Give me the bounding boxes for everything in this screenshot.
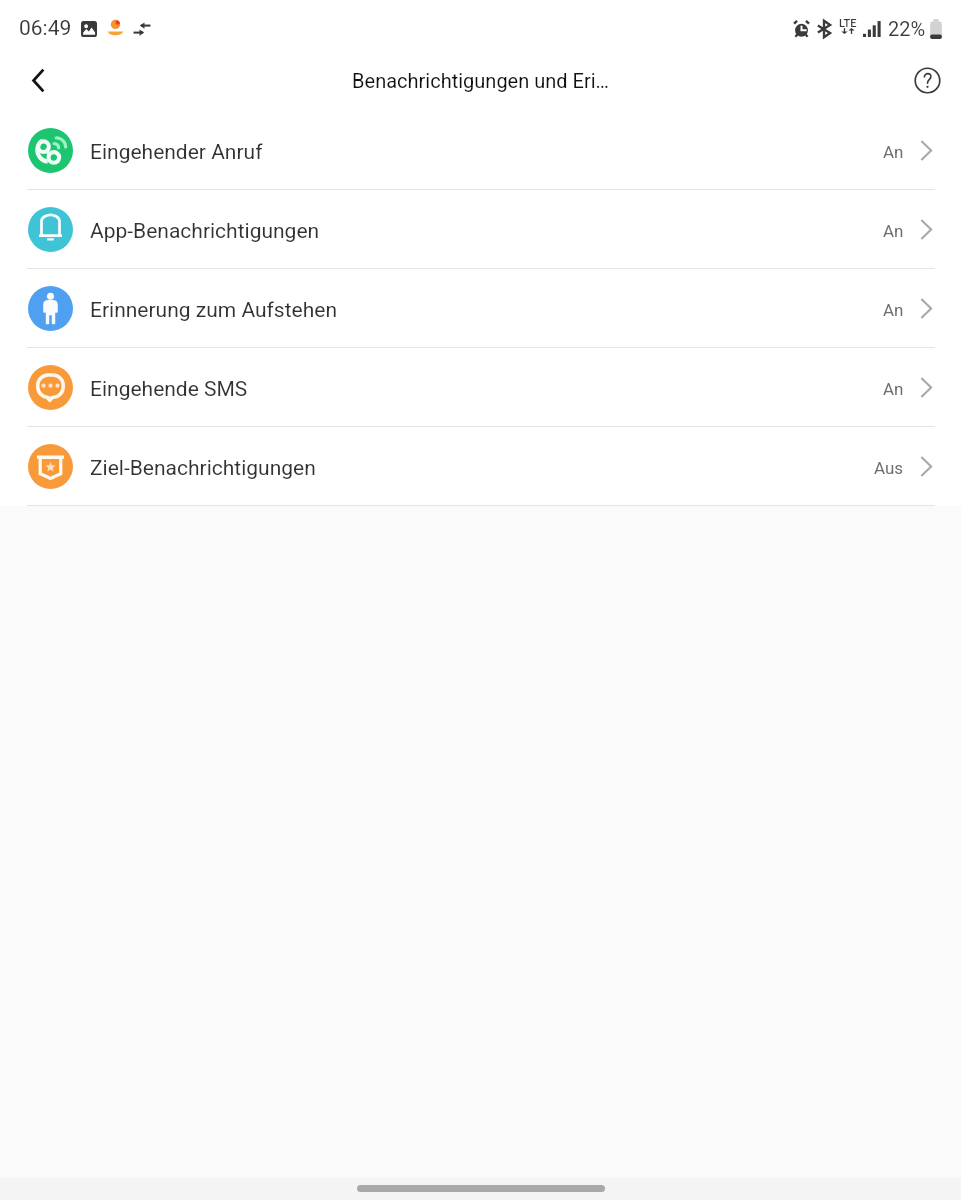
button[interactable]: Help bbox=[903, 56, 951, 104]
staticText: Eingehender Anruf bbox=[90, 140, 263, 165]
staticText: 06:49 bbox=[19, 16, 72, 41]
button[interactable]: App-Benachrichtigungen bbox=[0, 190, 961, 269]
button[interactable]: Eingehender Anruf bbox=[0, 111, 961, 190]
staticText: An bbox=[883, 221, 904, 241]
staticText: Aus bbox=[874, 458, 904, 478]
staticText: Erinnerung zum Aufstehen bbox=[90, 298, 338, 323]
staticText: App-Benachrichtigungen bbox=[90, 219, 320, 244]
button[interactable]: Back bbox=[14, 56, 62, 104]
staticText: An bbox=[883, 379, 904, 399]
staticText: Benachrichtigungen und Eri… bbox=[352, 69, 609, 92]
button[interactable]: Eingehende SMS bbox=[0, 348, 961, 427]
button[interactable]: Ziel-Benachrichtigungen bbox=[0, 427, 961, 506]
staticText: LTE bbox=[839, 17, 857, 30]
button[interactable]: Erinnerung zum Aufstehen bbox=[0, 269, 961, 348]
staticText: Ziel-Benachrichtigungen bbox=[90, 456, 316, 481]
staticText: An bbox=[883, 142, 904, 162]
staticText: Eingehende SMS bbox=[90, 377, 248, 402]
staticText: 22% bbox=[888, 17, 926, 40]
staticText: An bbox=[883, 300, 904, 320]
